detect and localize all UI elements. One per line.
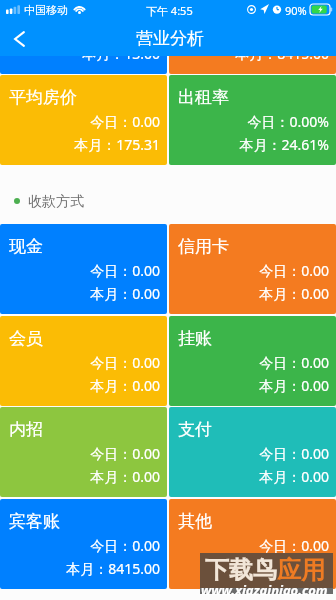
staticText: 本月：13.00 — [0, 44, 160, 63]
staticText: 中国移动 — [24, 3, 68, 17]
staticText: 出租率 — [178, 87, 229, 108]
staticText: 收款方式 — [28, 193, 84, 209]
staticText: 今日：0.00 — [169, 353, 329, 372]
staticText: 本月：0.00 — [169, 376, 329, 395]
staticText: 下载鸟 — [205, 555, 277, 585]
button[interactable]: Back — [2, 22, 36, 56]
staticText: 今日：0.00 — [0, 536, 160, 555]
staticText: 今日：0.00 — [0, 21, 160, 40]
staticText: 今日：0.00 — [0, 261, 160, 280]
staticText: 本月：0.00 — [0, 284, 160, 303]
staticText: 今日：0.00 — [169, 536, 329, 555]
staticText: 本月：8415.00 — [169, 44, 329, 63]
staticText: 今日：0.00 — [169, 21, 329, 40]
staticText: 今日：0.00 — [169, 444, 329, 463]
staticText: 平均房价 — [9, 87, 77, 108]
staticText: 宾客账 — [9, 511, 60, 532]
staticText: 90% — [285, 3, 307, 18]
staticText: 支付 — [178, 419, 212, 440]
button[interactable]: 支付 — [169, 407, 336, 497]
staticText: 入住率 — [9, 0, 60, 17]
button[interactable]: 信用卡 — [169, 224, 336, 314]
button[interactable]: 挂账 — [169, 316, 336, 406]
staticText: 营业分析 — [136, 28, 204, 49]
staticText: www.xiazainiao.com — [201, 581, 328, 599]
staticText: 本月：8415.00 — [0, 559, 160, 578]
button[interactable]: 会员 — [0, 316, 167, 406]
staticText: 本月：175.31 — [0, 135, 160, 154]
button[interactable]: 宾客账 — [0, 499, 167, 589]
staticText: 本月：0.00 — [0, 376, 160, 395]
button[interactable]: 营业额 — [169, 0, 336, 74]
staticText: 今日：0.00 — [0, 353, 160, 372]
staticText: 今日：0.00 — [0, 444, 160, 463]
button[interactable]: 出租率 — [169, 75, 336, 165]
button[interactable]: 其他 — [169, 499, 336, 589]
staticText: 应用 — [277, 555, 325, 585]
staticText: 挂账 — [178, 328, 212, 349]
staticText: 今日：0.00 — [169, 261, 329, 280]
staticText: 其他 — [178, 511, 212, 532]
staticText: 信用卡 — [178, 236, 229, 257]
staticText: 本月：0.00 — [169, 284, 329, 303]
staticText: 内招 — [9, 419, 43, 440]
button[interactable]: 平均房价 — [0, 75, 167, 165]
staticText: 今日：0.00 — [0, 112, 160, 131]
staticText: 本月：0.00 — [169, 467, 329, 486]
staticText: 下午 4:55 — [146, 3, 193, 18]
staticText: 本月：0.00 — [0, 467, 160, 486]
staticText: 本月：24.61% — [169, 135, 329, 154]
staticText: 今日：0.00% — [169, 112, 329, 131]
button[interactable]: 入住率 — [0, 0, 167, 74]
button[interactable]: 内招 — [0, 407, 167, 497]
button[interactable]: 现金 — [0, 224, 167, 314]
staticText: 营业额 — [178, 0, 229, 17]
staticText: 本月：0.00 — [169, 559, 329, 578]
staticText: 现金 — [9, 236, 43, 257]
staticText: 会员 — [9, 328, 43, 349]
